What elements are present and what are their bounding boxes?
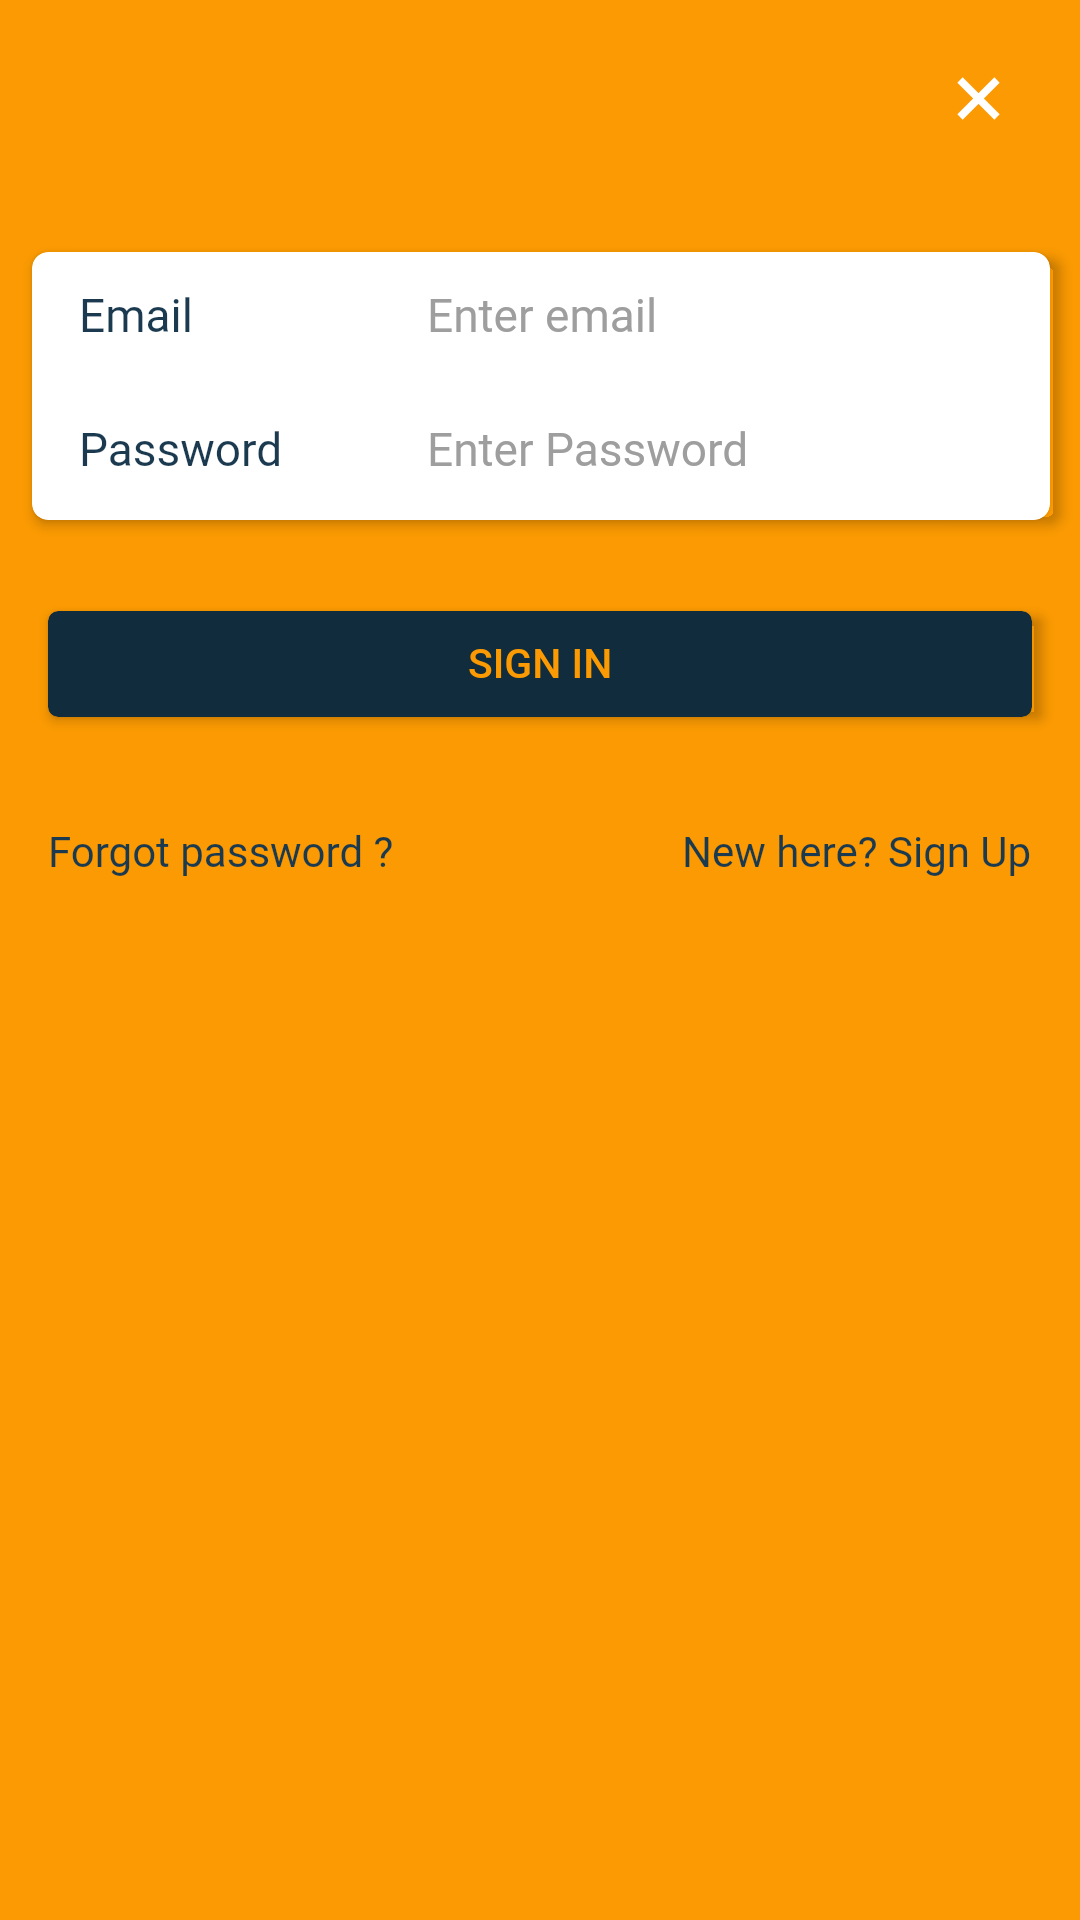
staticText: Forgot password ?	[48, 828, 394, 877]
button[interactable]: Email	[32, 252, 1050, 379]
staticText: Enter Password	[427, 423, 749, 477]
staticText: Enter email	[427, 289, 658, 343]
button[interactable]: Forgot password ?	[48, 828, 394, 877]
staticText: SIGN IN	[468, 640, 613, 688]
staticText: Email	[79, 289, 193, 343]
button[interactable]	[946, 66, 1010, 130]
staticText: Password	[79, 423, 283, 477]
button[interactable]: SIGN IN	[48, 611, 1032, 717]
staticText: New here? Sign Up	[682, 828, 1032, 877]
button[interactable]: New here? Sign Up	[682, 828, 1032, 877]
button[interactable]: Password	[32, 379, 1050, 520]
